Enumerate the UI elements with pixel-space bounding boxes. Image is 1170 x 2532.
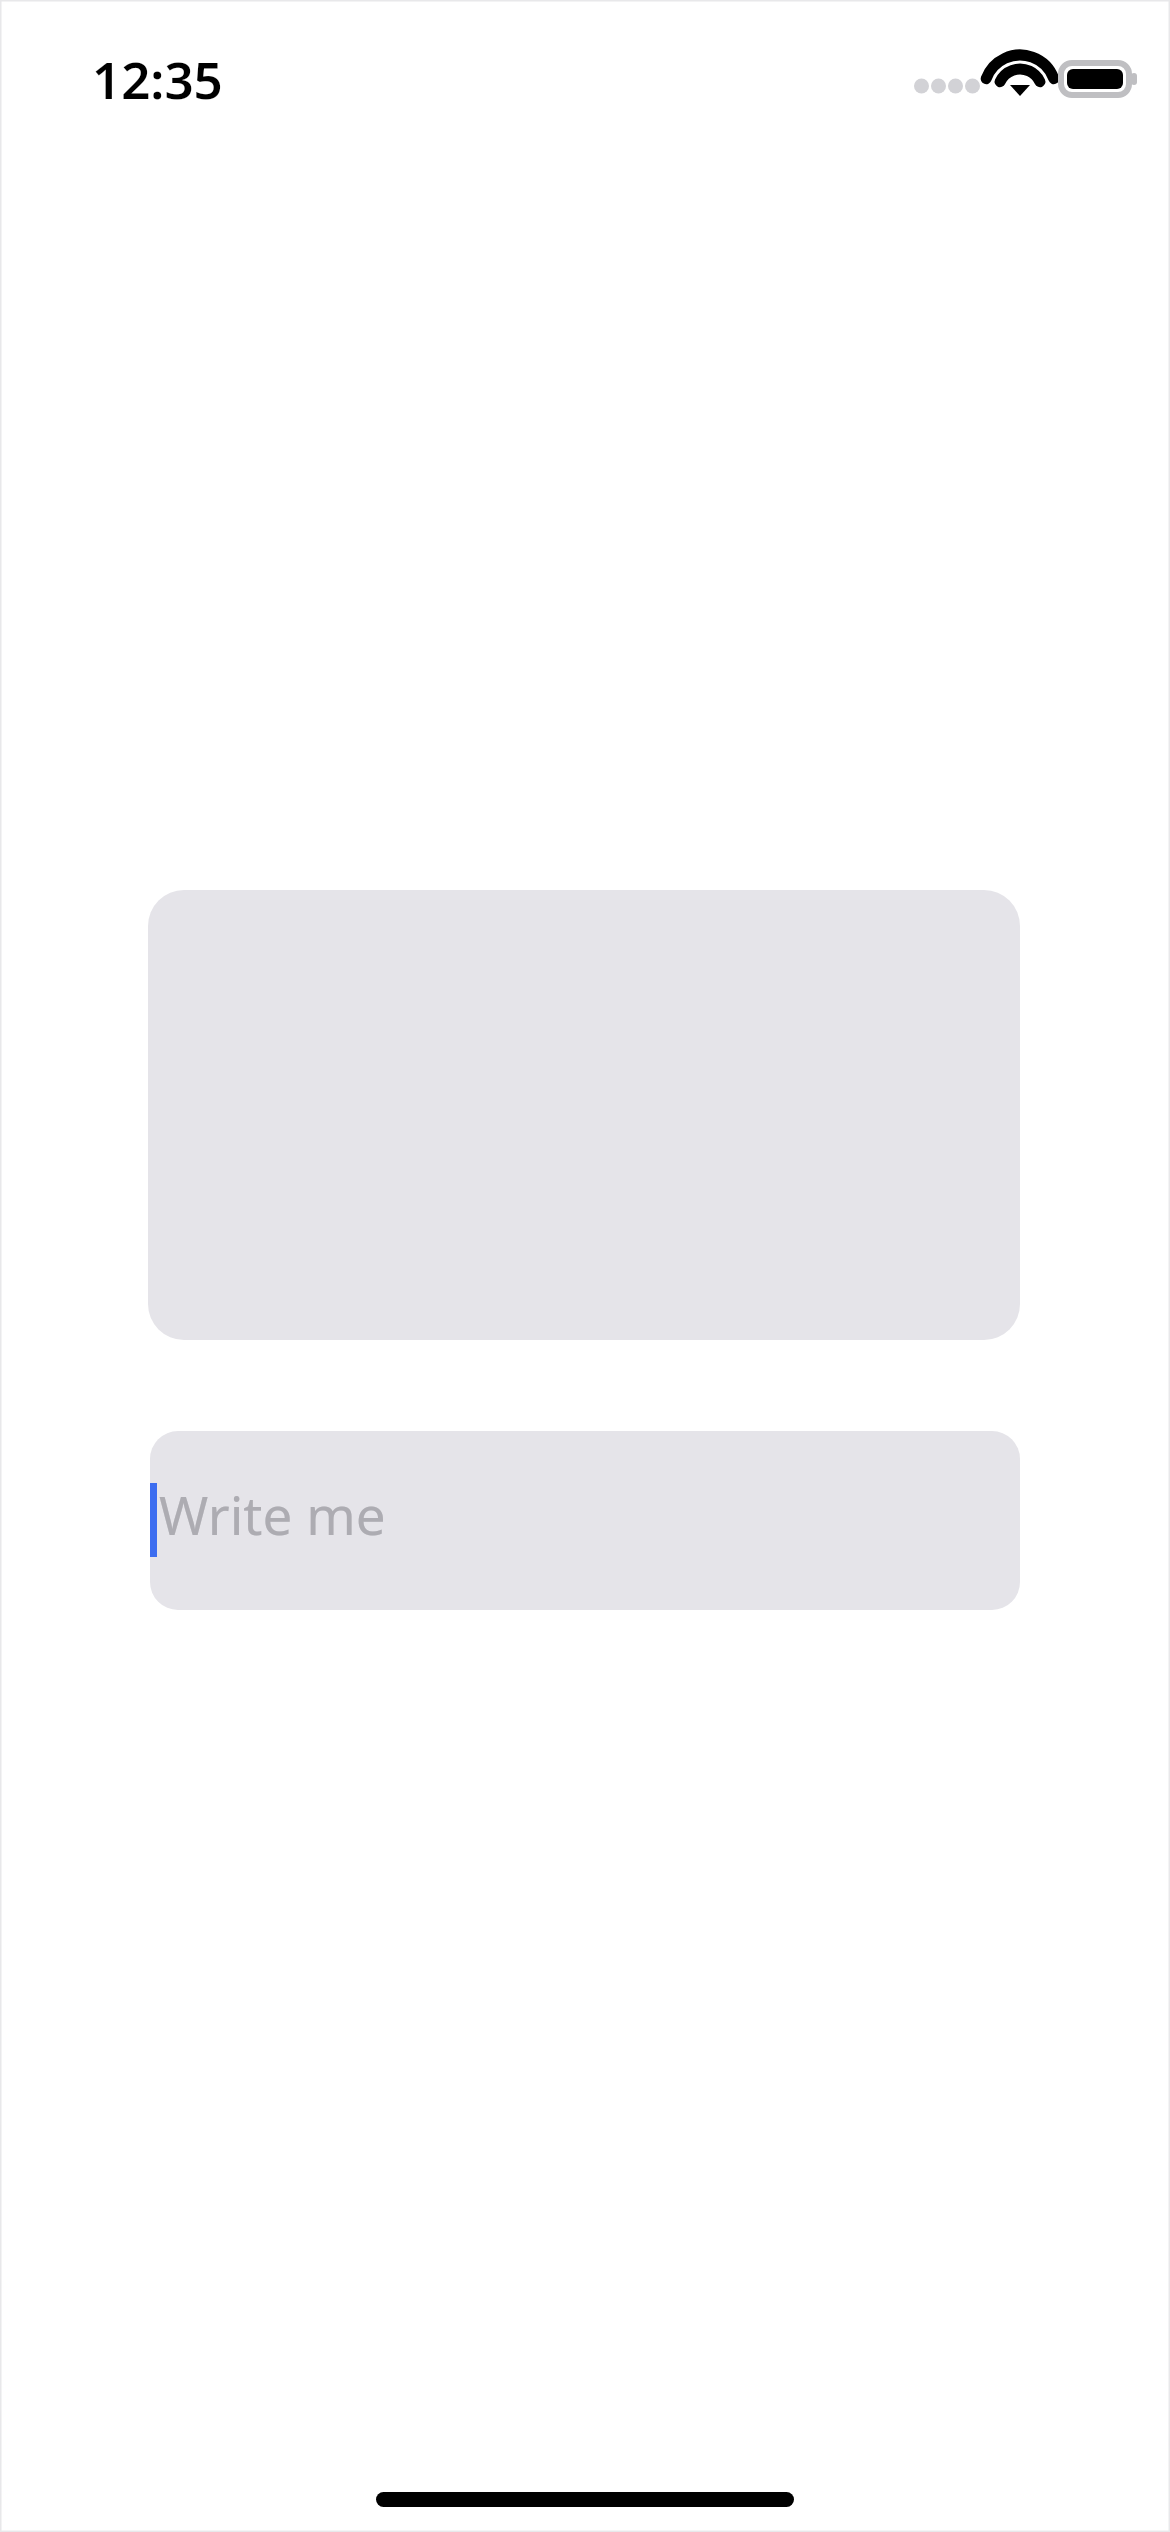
staticText: Write me (159, 1478, 386, 1550)
button[interactable]: Write me (150, 1431, 1020, 1610)
staticText: 12:35 (92, 44, 223, 113)
